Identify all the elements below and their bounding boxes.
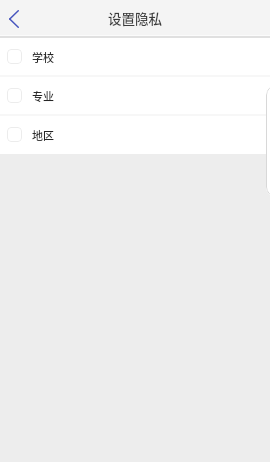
staticText: 学校 (32, 49, 54, 65)
staticText: 专业 (32, 88, 54, 104)
staticText: 地区 (32, 127, 54, 143)
other: Toggle 专业 (7, 88, 22, 103)
button[interactable]: Toggle 地区 (0, 116, 270, 153)
button[interactable]: Back (0, 2, 32, 34)
other: Toggle 学校 (7, 49, 22, 64)
staticText: 设置隐私 (108, 8, 162, 28)
button[interactable]: Toggle 学校 (0, 38, 270, 75)
button[interactable]: Toggle 专业 (0, 77, 270, 114)
other: Toggle 地区 (7, 127, 22, 142)
